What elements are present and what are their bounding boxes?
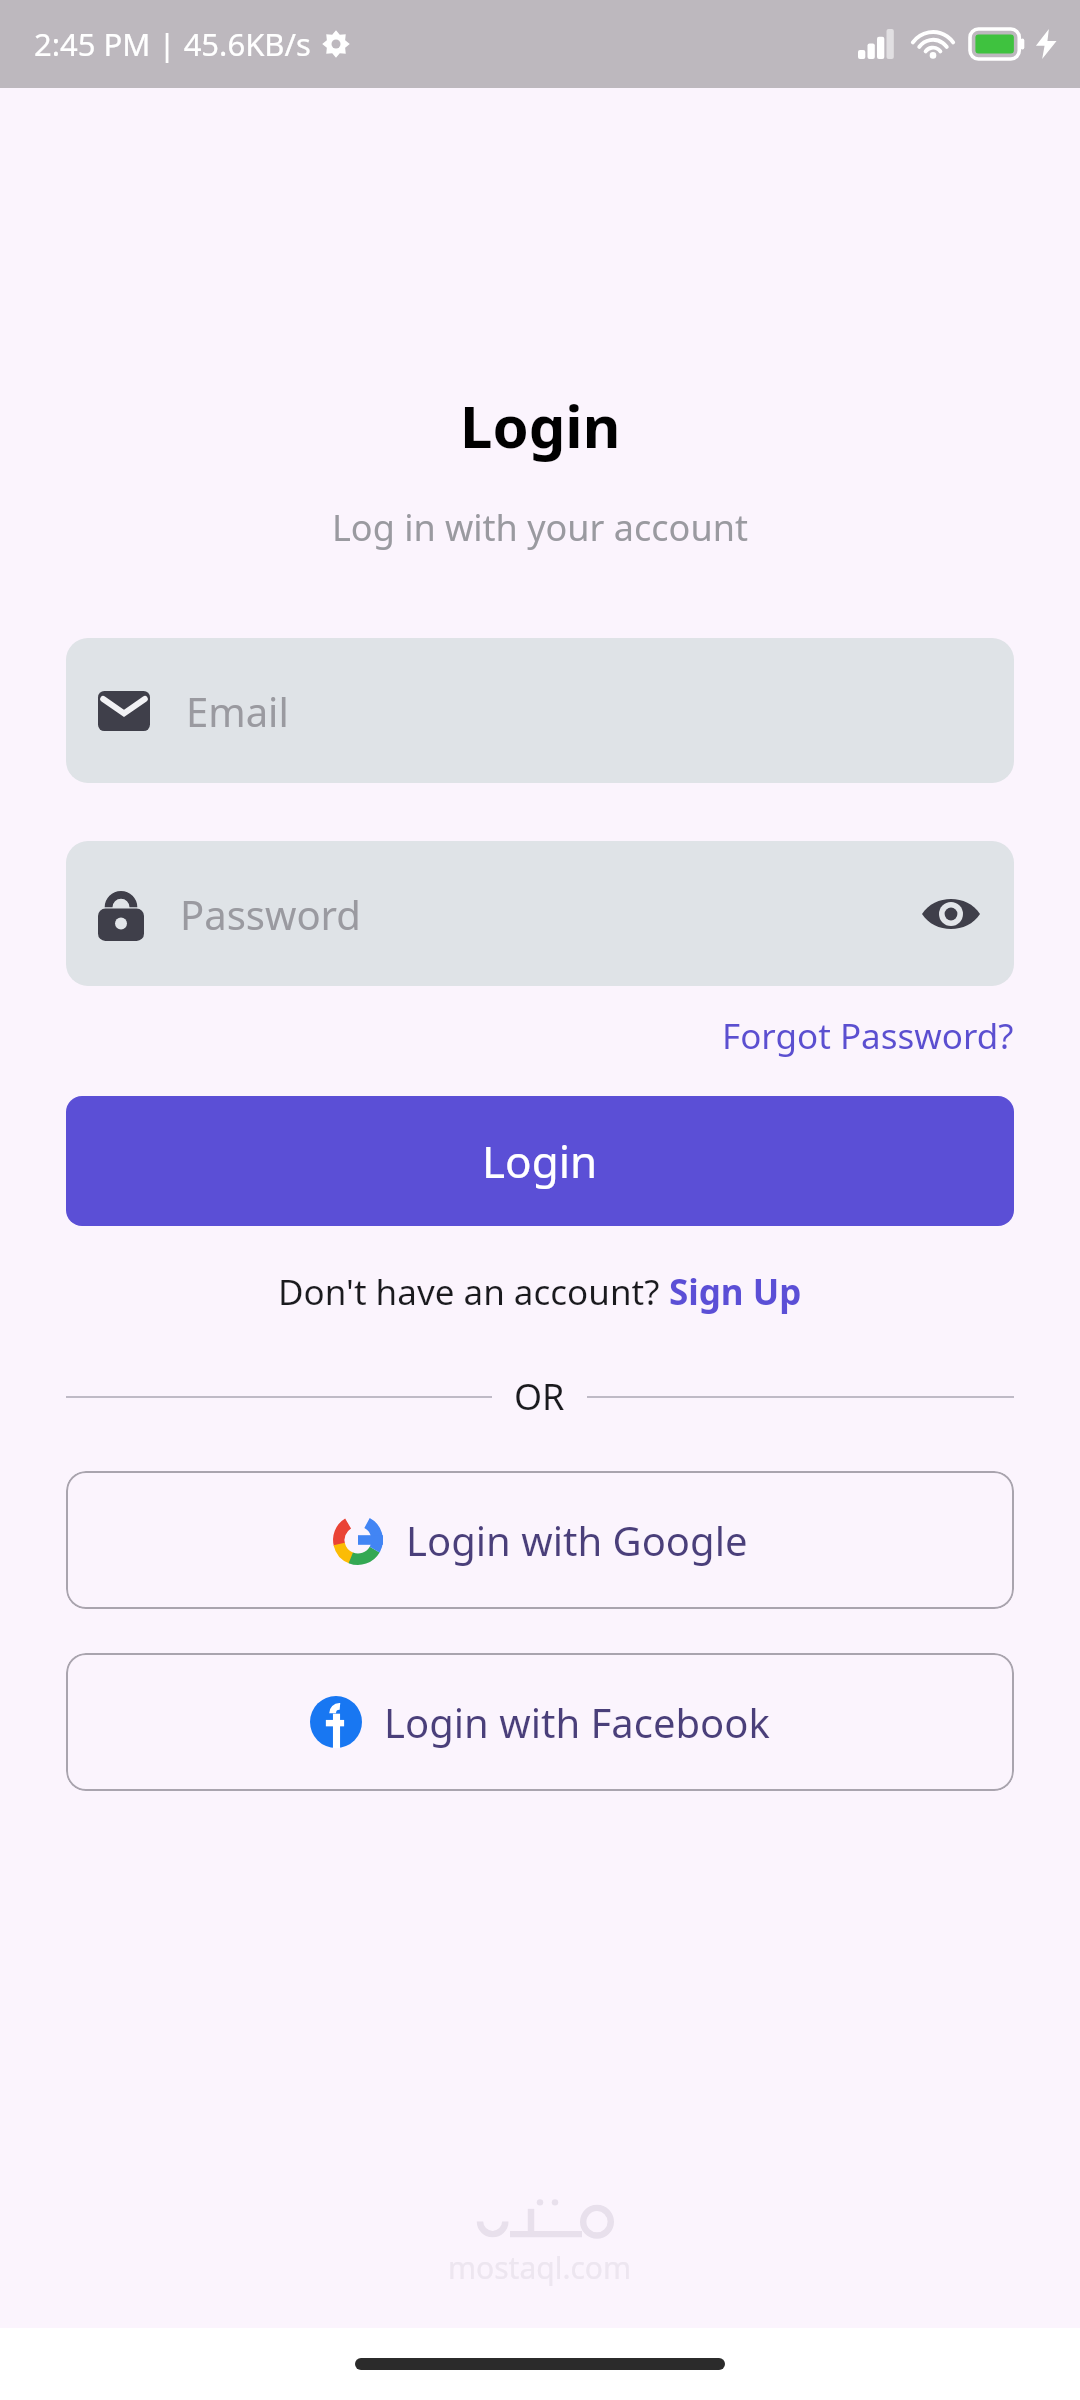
button[interactable]: Login with Facebook [66,1653,1014,1791]
staticText: Forgot Password? [722,1012,1014,1060]
staticText: Login [482,1131,598,1191]
staticText: Log in with your account [332,503,748,552]
button[interactable]: Don't have an account? [278,1268,802,1316]
button[interactable]: Password [66,841,1014,986]
button[interactable]: Login with Google [66,1471,1014,1609]
staticText: Login [460,386,621,465]
button[interactable]: Show password [920,883,982,945]
staticText: Login with Google [406,1513,748,1567]
staticText: OR [514,1372,565,1421]
button[interactable]: Forgot Password? [66,1012,1014,1060]
button[interactable]: Email [66,638,1014,783]
staticText: Sign Up [669,1268,802,1316]
staticText: mostaql.com [448,2247,632,2288]
staticText: Login with Facebook [384,1695,770,1749]
staticText: Email [186,684,982,738]
button[interactable]: Login [66,1096,1014,1226]
staticText: Password [180,887,920,941]
staticText: Don't have an account? [278,1268,669,1316]
staticText: 2:45 PM | 45.6KB/s [34,23,311,65]
